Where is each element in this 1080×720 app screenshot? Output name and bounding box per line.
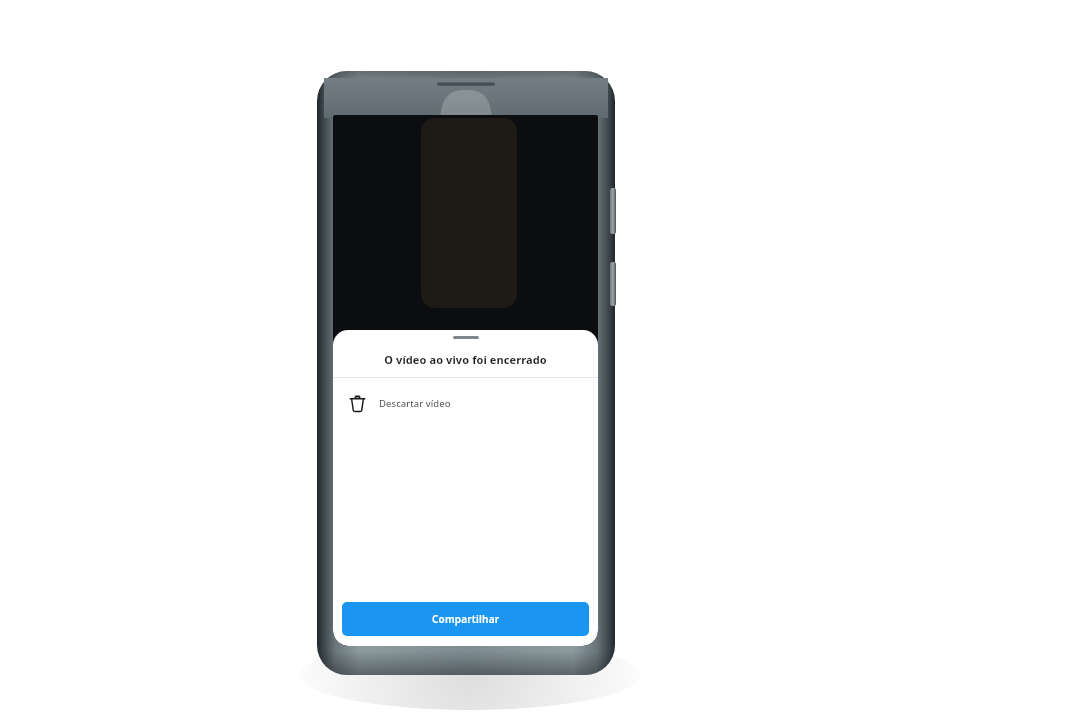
staticText: O vídeo ao vivo foi encerrado <box>333 352 598 367</box>
button[interactable]: Compartilhar <box>342 602 589 636</box>
button[interactable]: Descartar vídeo <box>333 378 598 428</box>
staticText: Compartilhar <box>432 612 500 626</box>
staticText: Descartar vídeo <box>379 397 451 410</box>
other: Descartar vídeo <box>349 395 366 412</box>
